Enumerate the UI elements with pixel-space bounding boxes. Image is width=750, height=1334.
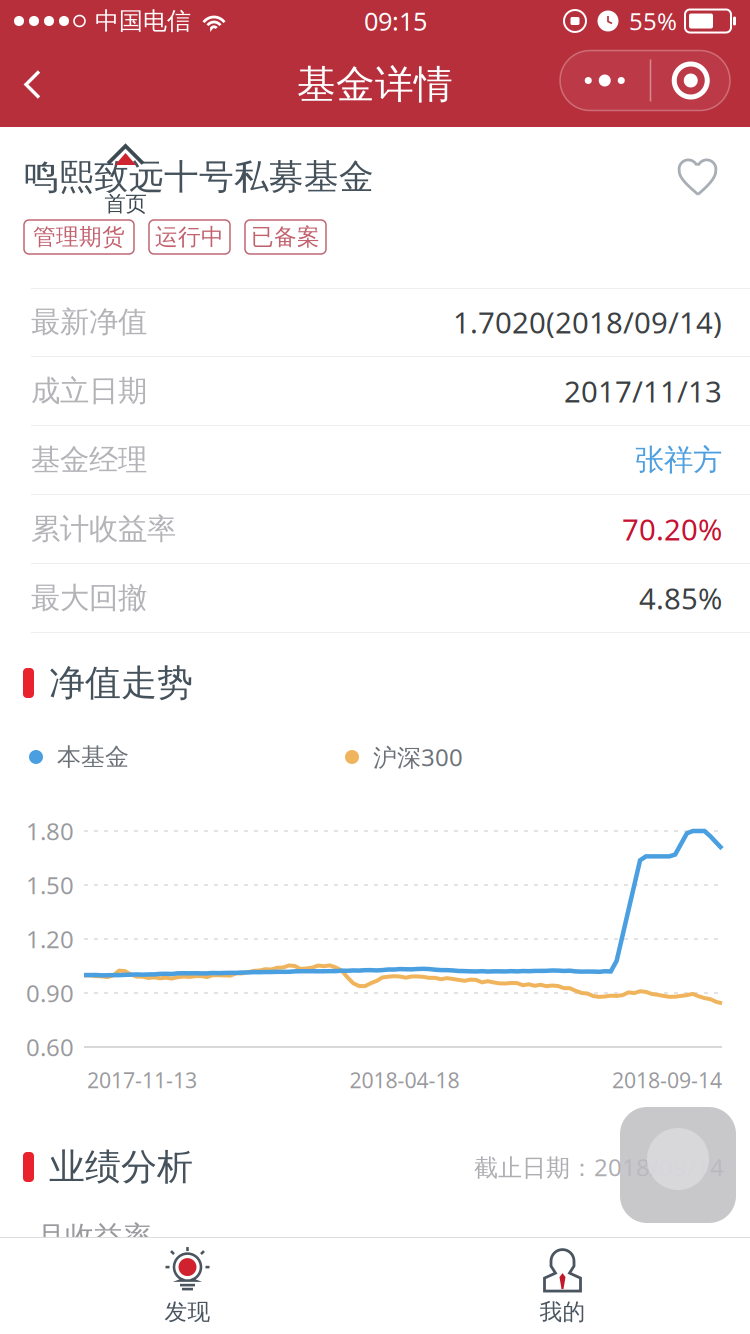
staticText: 业绩分析 <box>49 1145 193 1189</box>
button[interactable]: 我的 <box>375 1238 750 1334</box>
staticText: 2018-04-18 <box>349 1066 459 1094</box>
button[interactable]: 发现 <box>0 1238 375 1334</box>
staticText: 首页 <box>104 191 146 217</box>
staticText: 管理期货 <box>33 223 125 251</box>
staticText: 4.85% <box>639 578 722 617</box>
staticText: 已备案 <box>251 223 320 251</box>
staticText: 中国电信 <box>95 6 191 36</box>
staticText: 55% <box>629 5 677 37</box>
button[interactable]: Back <box>0 42 66 127</box>
staticText: 1.50 <box>26 869 74 901</box>
staticText: 最大回撤 <box>31 580 147 616</box>
staticText: 1.20 <box>26 923 74 955</box>
staticText: 70.20% <box>622 509 722 548</box>
staticText: 最新净值 <box>31 304 147 340</box>
staticText: 运行中 <box>155 223 224 251</box>
staticText: 本基金 <box>57 742 129 772</box>
staticText: 月收益率 <box>36 1219 152 1255</box>
staticText: 发现 <box>164 1298 210 1326</box>
staticText: 0.60 <box>26 1031 74 1063</box>
staticText: 鸣熙致远十号私募基金 <box>24 156 374 198</box>
staticText: 成立日期 <box>31 373 147 409</box>
button[interactable]: Add to favourites <box>668 155 728 199</box>
staticText: 张祥方 <box>635 442 722 478</box>
staticText: 基金经理 <box>31 442 147 478</box>
staticText: 沪深300 <box>373 741 463 773</box>
staticText: 我的 <box>539 1298 585 1326</box>
staticText: 09:15 <box>364 4 427 38</box>
staticText: 1.80 <box>26 815 74 847</box>
staticText: 累计收益率 <box>31 511 176 547</box>
staticText: 2017-11-13 <box>87 1066 197 1094</box>
staticText: 2018-09-14 <box>612 1066 722 1094</box>
staticText: 基金详情 <box>297 61 453 108</box>
staticText: 净值走势 <box>49 661 193 705</box>
staticText: 2017/11/13 <box>564 371 722 410</box>
staticText: 1.7020(2018/09/14) <box>453 302 722 341</box>
staticText: 截止日期：2018/09/14 <box>474 1151 724 1183</box>
staticText: 0.90 <box>26 977 74 1009</box>
button[interactable]: More options <box>550 42 740 127</box>
